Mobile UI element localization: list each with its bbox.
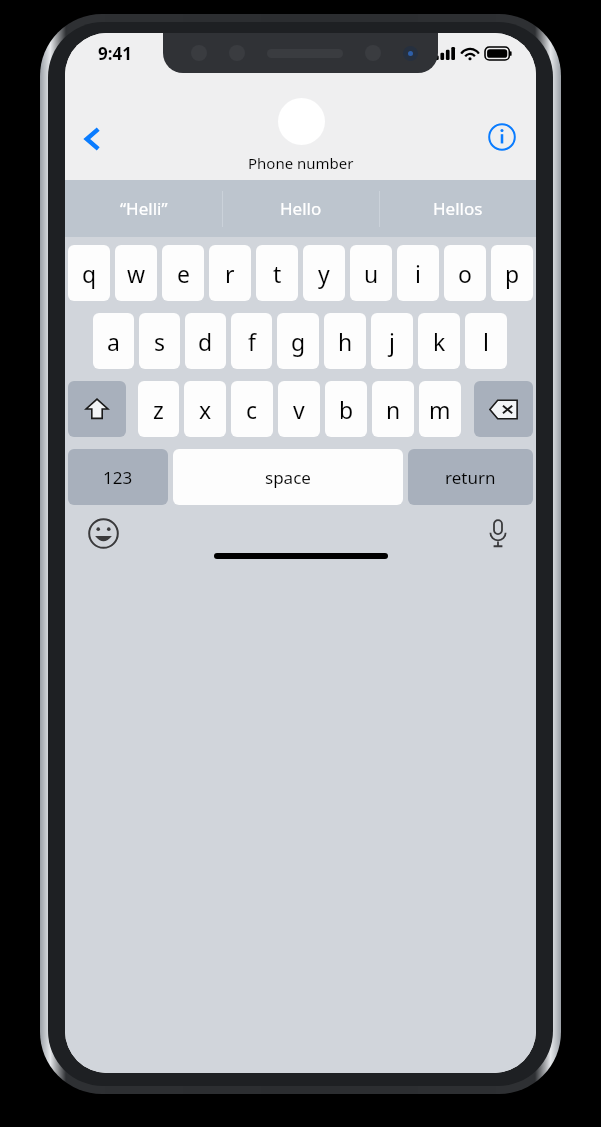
staticText: “Helli” [120,197,168,220]
button[interactable]: n [372,381,414,437]
button[interactable]: space [173,449,403,505]
button[interactable]: t [256,245,298,301]
staticText: e [177,258,190,289]
staticText: d [198,326,213,357]
button[interactable]: h [324,313,366,369]
button[interactable]: p [491,245,533,301]
button[interactable]: Hello [223,180,379,237]
button[interactable]: g [277,313,319,369]
staticText: Hellos [433,197,483,220]
staticText: 9:41 [98,42,132,65]
button[interactable]: Shift [68,381,126,437]
button[interactable]: l [465,313,507,369]
staticText: t [273,258,282,289]
button[interactable]: a [93,313,134,369]
button[interactable]: i [397,245,439,301]
button[interactable]: b [325,381,367,437]
staticText: m [429,394,451,425]
button[interactable]: 123 [68,449,168,505]
staticText: p [505,258,520,289]
staticText: r [225,258,235,289]
staticText: w [127,258,146,289]
button[interactable]: w [115,245,157,301]
button[interactable]: r [209,245,251,301]
button[interactable]: Hellos [380,180,536,237]
button[interactable]: k [418,313,460,369]
staticText: s [154,326,166,357]
button[interactable] [278,98,325,145]
button[interactable]: o [444,245,486,301]
staticText: u [364,258,379,289]
button[interactable]: j [371,313,413,369]
staticText: c [246,394,258,425]
button[interactable]: m [419,381,461,437]
button[interactable]: y [303,245,345,301]
button[interactable]: x [184,381,226,437]
staticText: k [433,326,446,357]
button[interactable]: Details [480,115,524,159]
staticText: Hello [280,197,322,220]
staticText: l [483,326,489,357]
button[interactable]: Emoji [81,511,125,555]
staticText: b [339,394,354,425]
staticText: q [82,258,97,289]
button[interactable]: return [408,449,533,505]
staticText: a [107,326,120,357]
staticText: 123 [103,466,133,489]
button[interactable]: e [162,245,204,301]
button[interactable]: q [68,245,110,301]
staticText: v [293,394,305,425]
staticText: z [153,394,164,425]
staticText: n [386,394,401,425]
button[interactable]: d [185,313,226,369]
button[interactable]: s [139,313,180,369]
staticText: h [338,326,353,357]
staticText: return [445,466,496,489]
button[interactable]: Back [69,115,117,163]
staticText: space [265,466,311,489]
button[interactable]: u [350,245,392,301]
staticText: j [389,326,395,357]
button[interactable]: c [231,381,273,437]
staticText: i [415,258,421,289]
button[interactable]: Dictation [476,511,520,555]
button[interactable]: “Helli” [65,180,222,237]
button[interactable]: Delete [474,381,533,437]
staticText: g [291,326,306,357]
button[interactable]: v [278,381,320,437]
staticText: f [248,326,256,357]
staticText: Phone number [248,153,354,173]
button[interactable]: f [231,313,272,369]
button[interactable]: z [138,381,179,437]
staticText: o [458,258,472,289]
staticText: x [199,394,212,425]
staticText: y [318,258,330,289]
